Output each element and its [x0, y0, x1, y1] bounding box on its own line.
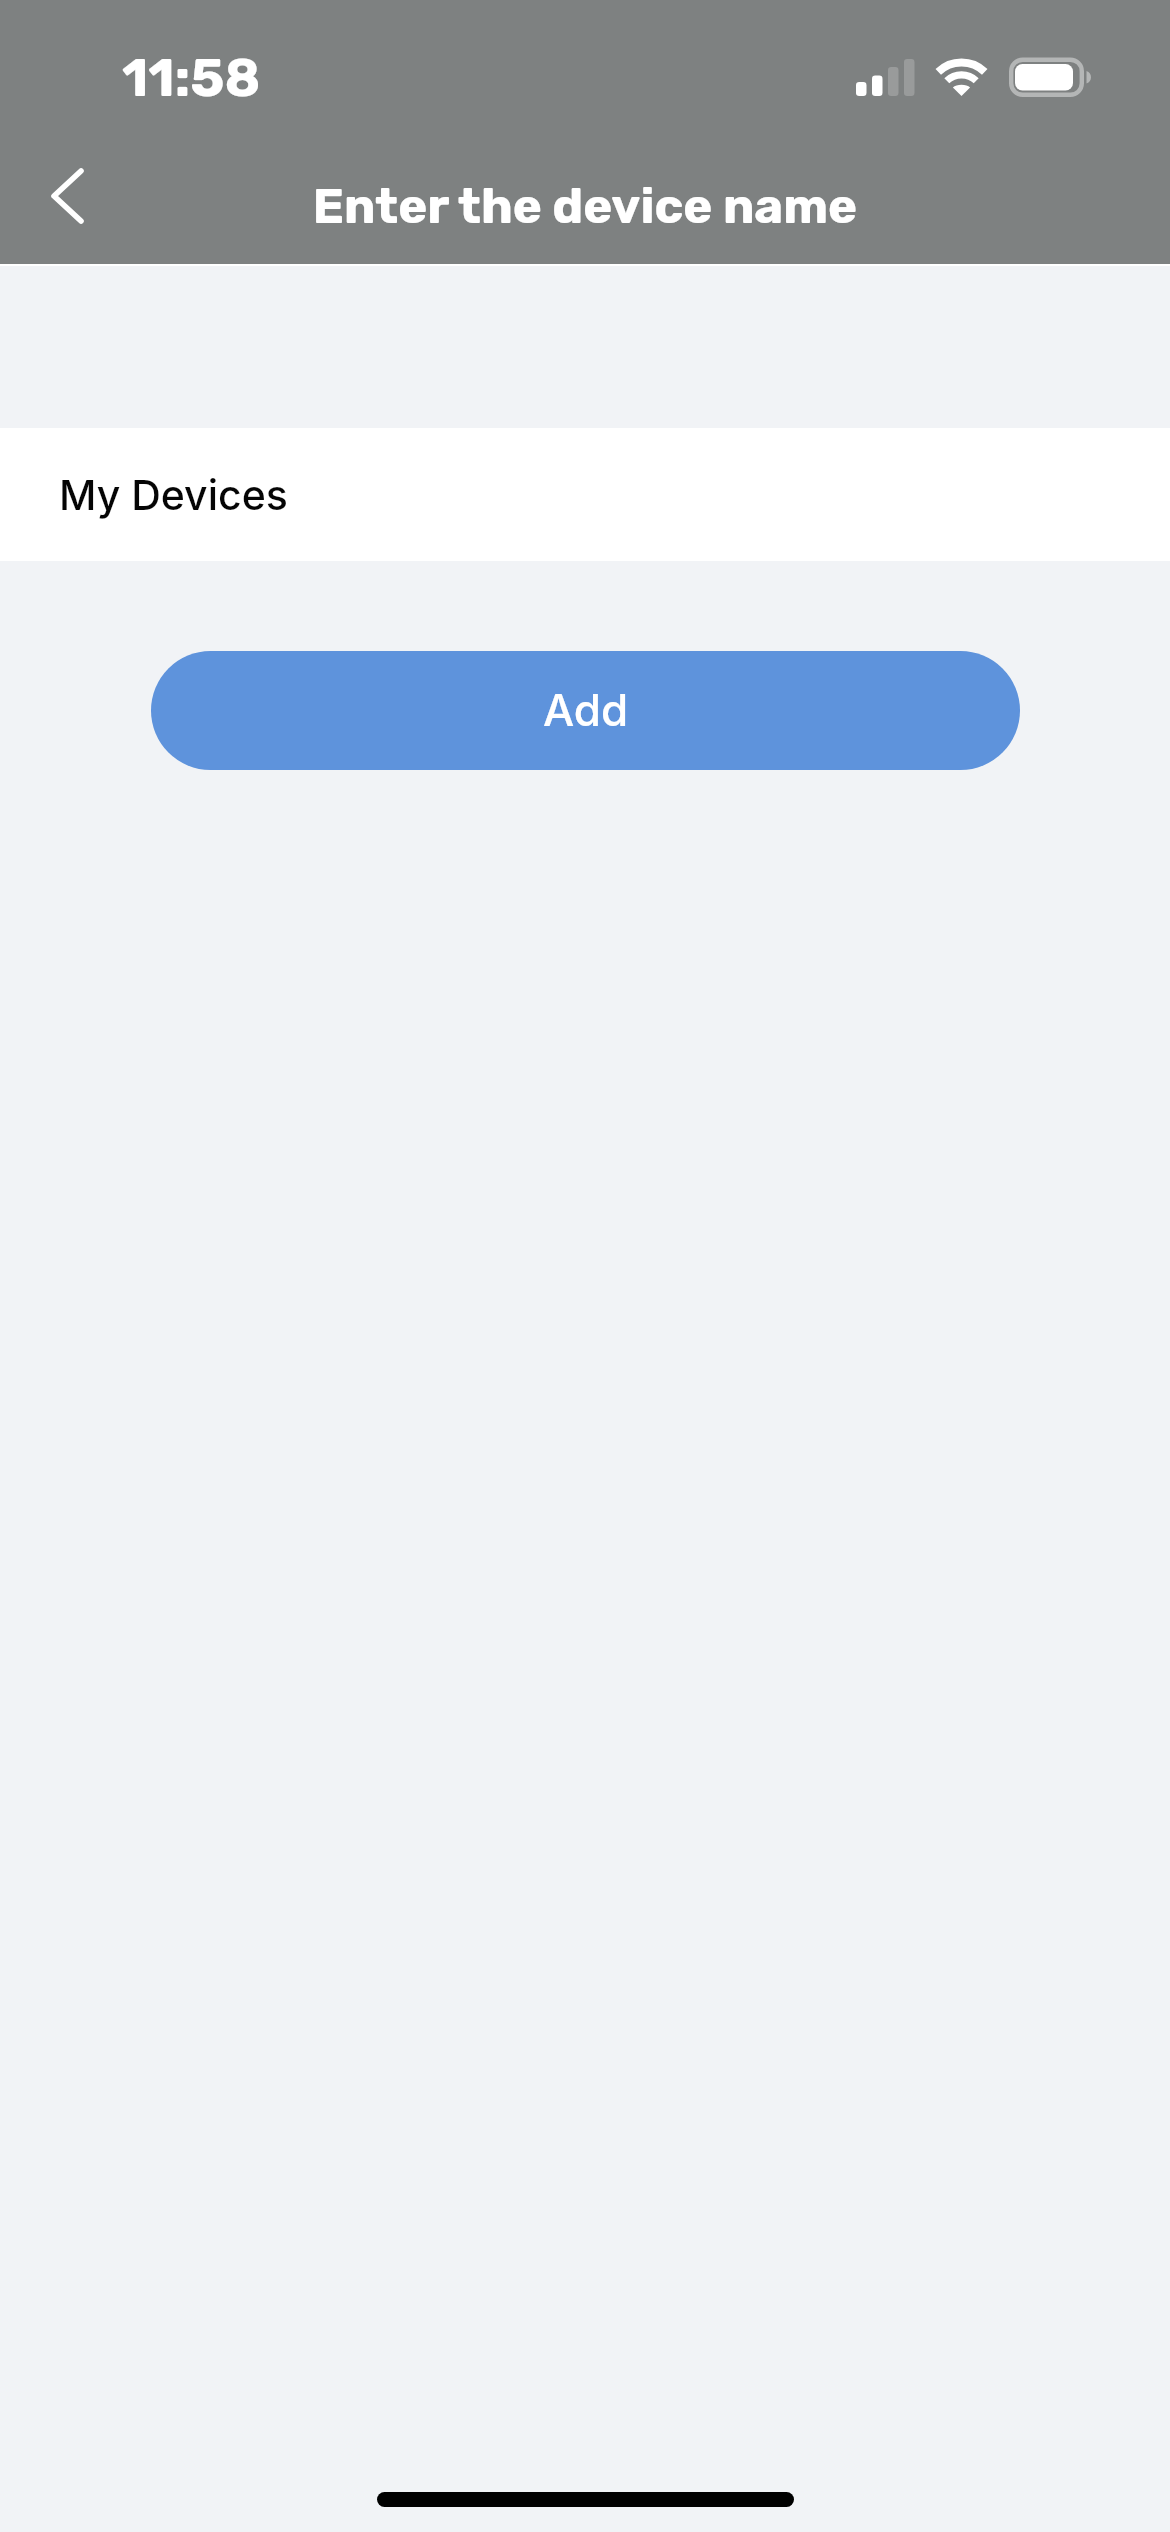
button[interactable]: My Devices [0, 428, 1170, 561]
button[interactable]: Back [8, 146, 108, 246]
staticText: 11:58 [122, 46, 261, 109]
staticText: Add [543, 683, 629, 736]
button[interactable]: Add [151, 651, 1020, 770]
staticText: Enter the device name [0, 177, 1170, 235]
staticText: My Devices [59, 470, 288, 520]
